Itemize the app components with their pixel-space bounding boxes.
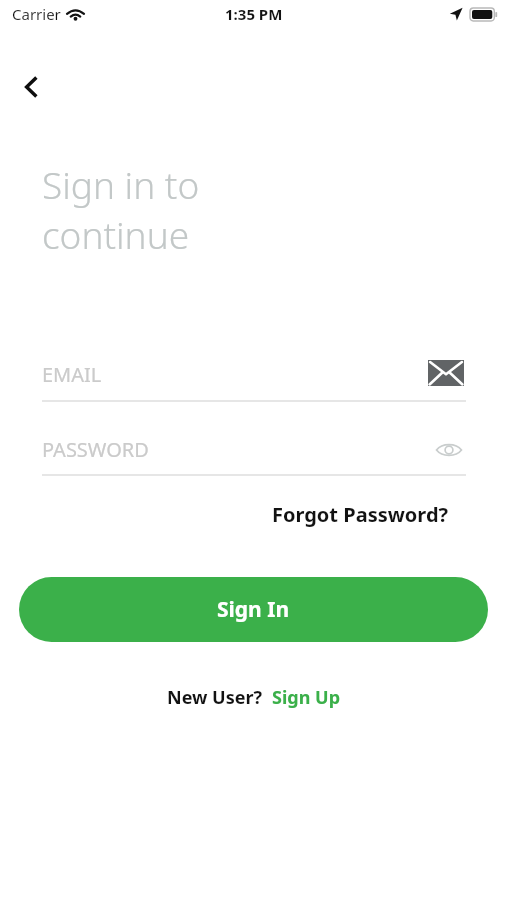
button[interactable]: Back (8, 64, 54, 110)
button[interactable]: Forgot Password? (272, 497, 449, 531)
staticText: PASSWORD (42, 436, 149, 463)
button[interactable]: PASSWORD (42, 426, 466, 476)
staticText: Carrier (12, 4, 61, 24)
button[interactable]: Sign Up (272, 685, 341, 710)
staticText: New User? (167, 685, 263, 710)
staticText: Sign Up (272, 685, 341, 710)
button[interactable]: EMAIL (42, 352, 466, 404)
staticText: EMAIL (42, 361, 102, 388)
staticText: Forgot Password? (272, 501, 449, 528)
staticText: Sign in to (42, 159, 200, 209)
button[interactable]: Sign In (19, 577, 488, 642)
staticText: Sign In (217, 595, 290, 624)
staticText: 1:35 PM (225, 4, 283, 24)
other: Email (426, 358, 466, 388)
staticText: continue (42, 209, 190, 259)
other: Show password (432, 437, 466, 463)
